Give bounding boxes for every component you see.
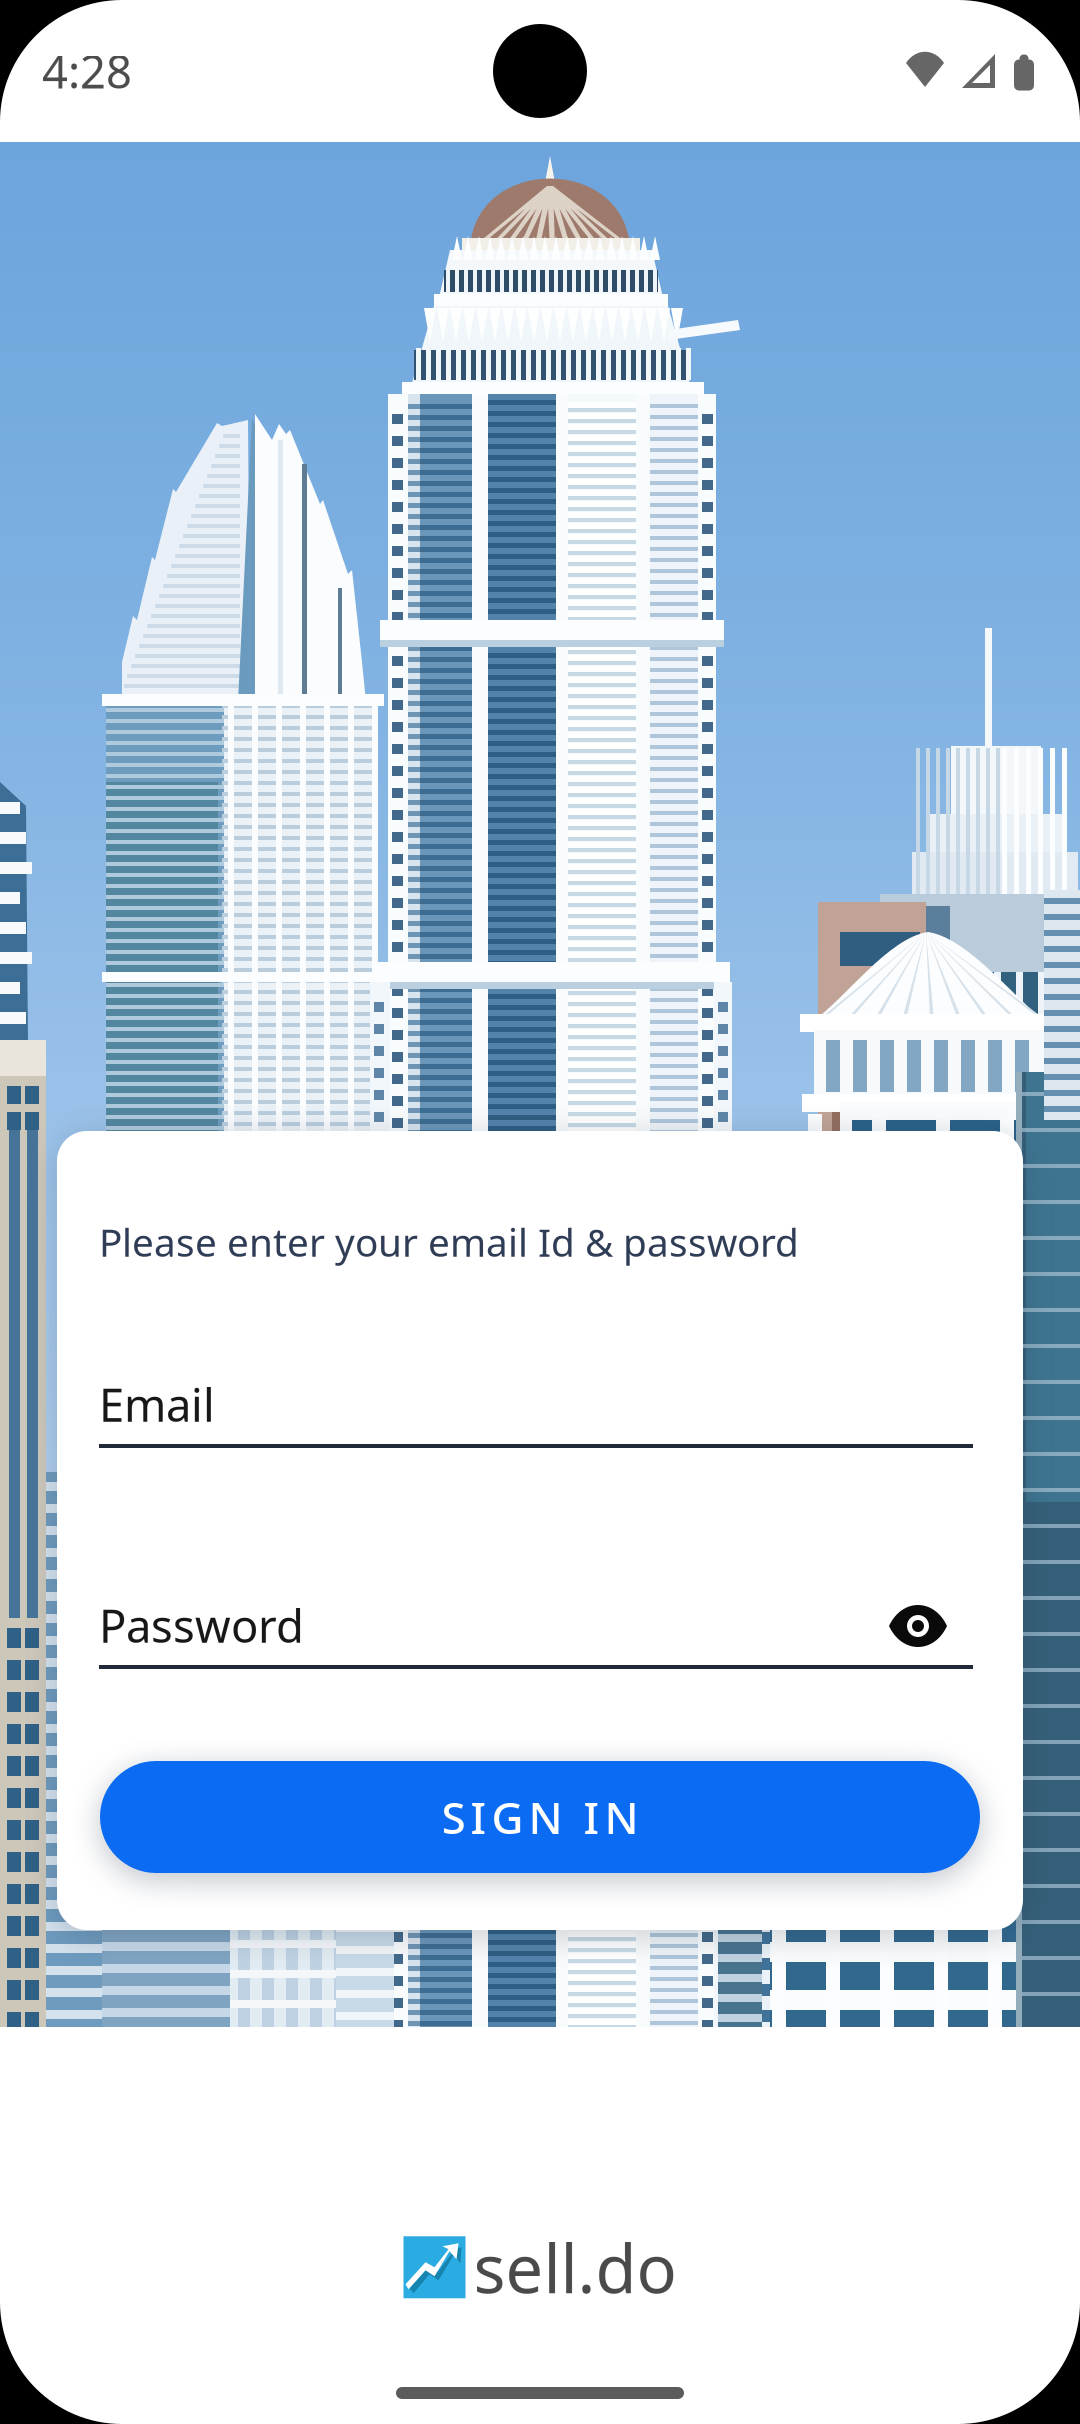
staticText: sell.do <box>473 2223 676 2311</box>
staticText: SIGN IN <box>441 1788 638 1846</box>
button[interactable]: SIGN IN <box>100 1761 980 1873</box>
staticText: Password <box>99 1595 304 1655</box>
staticText: Email <box>99 1374 215 1434</box>
staticText: 4:28 <box>42 41 132 101</box>
button[interactable]: Show password <box>889 1605 947 1647</box>
staticText: Please enter your email Id & password <box>99 1216 799 1267</box>
